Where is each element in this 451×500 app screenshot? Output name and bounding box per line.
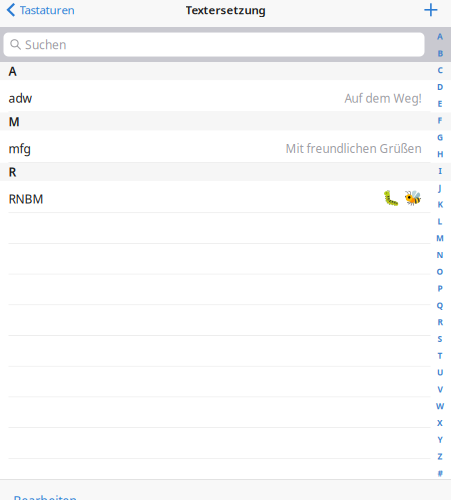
button[interactable]: L [429,213,451,230]
button[interactable]: Y [429,431,451,448]
staticText: J [438,182,441,193]
button[interactable]: A [429,28,451,45]
staticText: K [437,199,442,210]
button[interactable]: C [429,62,451,78]
staticText: R [8,164,16,180]
staticText: T [437,350,442,361]
button[interactable]: G [429,129,451,146]
staticText: P [437,283,442,294]
staticText: F [437,115,442,126]
staticText: S [437,333,442,344]
staticText: W [436,400,444,412]
button[interactable]: adw [0,80,451,112]
button[interactable]: O [429,263,451,280]
staticText: G [437,132,443,143]
button[interactable]: S [429,330,451,347]
button[interactable]: RNBM [0,181,451,213]
staticText: B [437,48,442,59]
staticText: L [437,216,442,227]
staticText: mfg [8,140,30,157]
staticText: Bearbeiten [13,492,77,500]
button[interactable]: N [429,246,451,263]
button[interactable]: Bearbeiten [0,492,87,500]
button[interactable]: R [429,314,451,330]
staticText: Suchen [25,36,66,53]
staticText: A [437,31,443,42]
staticText: Auf dem Weg! [344,90,421,106]
staticText: O [436,266,443,277]
staticText: Z [437,451,442,462]
button[interactable]: H [429,146,451,162]
staticText: C [437,64,442,76]
button[interactable]: E [429,95,451,112]
staticText: R [437,316,442,328]
button[interactable]: J [429,179,451,196]
staticText: Q [436,300,443,311]
staticText: N [436,249,443,260]
staticText: Y [437,434,442,445]
button[interactable]: B [429,45,451,62]
staticText: V [437,384,442,395]
button[interactable]: W [429,398,451,414]
button[interactable]: F [429,112,451,129]
staticText: D [437,81,443,92]
staticText: Tastaturen [19,2,74,18]
button[interactable]: U [429,364,451,381]
button[interactable]: Tastaturen [0,0,80,20]
staticText: H [437,148,443,160]
staticText: I [438,165,441,176]
staticText: Textersetzung [185,2,265,18]
button[interactable]: T [429,347,451,364]
staticText: U [437,367,443,378]
staticText: 🐛 🐝 [381,187,421,207]
button[interactable]: D [429,78,451,95]
button[interactable]: P [429,280,451,297]
staticText: Mit freundlichen Grüßen [285,141,421,157]
button[interactable]: # [429,465,451,482]
button[interactable]: V [429,381,451,398]
staticText: # [437,468,442,479]
button[interactable]: Z [429,448,451,465]
button[interactable]: I [429,162,451,179]
staticText: A [8,63,16,79]
staticText: adw [8,90,31,106]
button[interactable]: mfg [0,131,451,163]
staticText: X [437,417,443,428]
button[interactable]: Add text replacement [418,0,444,20]
button[interactable]: K [429,196,451,213]
button[interactable]: X [429,414,451,431]
staticText: M [8,113,19,130]
button[interactable]: Search [3,32,424,56]
staticText: M [436,232,444,244]
staticText: E [437,98,442,109]
button[interactable]: M [429,230,451,246]
staticText: RNBM [8,191,43,207]
button[interactable]: Q [429,297,451,314]
